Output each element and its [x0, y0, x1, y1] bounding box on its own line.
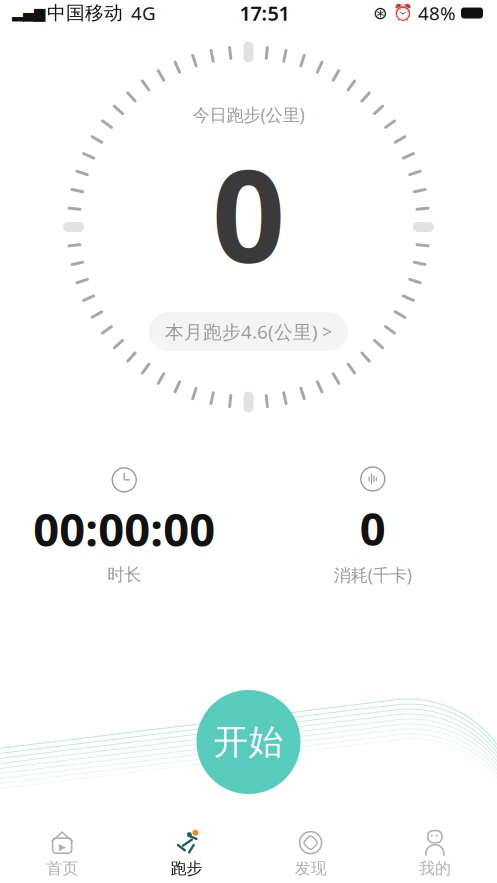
staticText: 0	[212, 128, 285, 298]
staticText: ⊛	[373, 3, 388, 23]
staticText: 跑步	[170, 859, 202, 878]
staticText: 今日跑步(公里)	[192, 103, 304, 126]
staticText: 4G	[131, 1, 156, 25]
staticText: 开始	[213, 721, 283, 763]
staticText: >	[322, 320, 332, 343]
staticText: 00:00:00	[33, 499, 215, 559]
button[interactable]: 我的	[373, 824, 497, 883]
staticText: 消耗(千卡)	[334, 563, 412, 586]
staticText: ⏰	[393, 4, 413, 22]
staticText: 本月跑步4.6(公里)	[165, 319, 318, 344]
staticText: 0	[360, 498, 386, 558]
staticText: 中国移动	[47, 1, 123, 24]
button[interactable]: 跑步	[124, 824, 248, 883]
staticText: 时长	[107, 564, 141, 585]
staticText: 首页	[46, 859, 78, 878]
staticText: 发现	[295, 859, 327, 878]
button[interactable]: ▶	[0, 824, 124, 883]
button[interactable]: 发现	[248, 824, 373, 883]
button[interactable]: 开始	[196, 690, 300, 794]
button[interactable]: 本月跑步4.6(公里)	[149, 312, 348, 351]
staticText: 我的	[419, 859, 451, 878]
staticText: ▂▄▆	[12, 5, 45, 21]
staticText: 17:51	[239, 0, 289, 26]
staticText: 48%	[418, 1, 456, 25]
staticText: ▶	[59, 841, 66, 852]
